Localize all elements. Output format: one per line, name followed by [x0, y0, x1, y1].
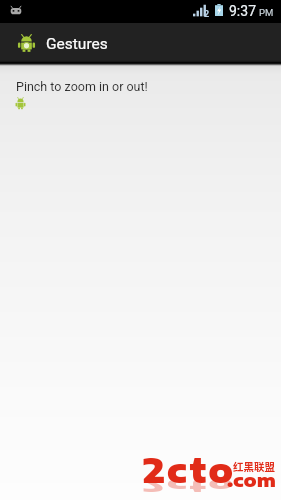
- staticText: 红黑联盟: [233, 459, 275, 474]
- button[interactable]: Gestures: [0, 23, 281, 63]
- staticText: 2: [204, 9, 210, 20]
- staticText: 2cto: [143, 474, 235, 496]
- other: Battery charging: [215, 4, 223, 16]
- staticText: 9:37: [229, 3, 256, 19]
- other: Android: [15, 97, 26, 110]
- staticText: 2cto: [143, 448, 235, 491]
- staticText: Gestures: [46, 35, 108, 53]
- other: Mobile signal: [193, 4, 210, 17]
- staticText: PM: [259, 7, 274, 18]
- staticText: .com: [227, 468, 276, 490]
- other: Notification: [9, 6, 23, 15]
- staticText: Pinch to zoom in or out!: [16, 79, 148, 94]
